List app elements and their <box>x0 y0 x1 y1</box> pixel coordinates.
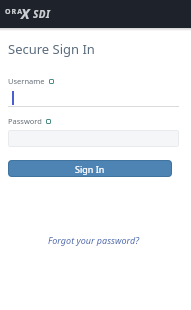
staticText: Sign In <box>75 163 105 175</box>
button[interactable] <box>8 130 179 147</box>
staticText: ORA <box>5 7 23 17</box>
staticText: X <box>21 4 30 23</box>
button[interactable] <box>8 86 179 107</box>
button[interactable]: ORA <box>0 0 191 28</box>
staticText: Password <box>8 116 42 126</box>
staticText: Username <box>8 76 45 86</box>
button[interactable]: Sign In <box>8 160 172 177</box>
staticText: SDI <box>33 7 51 21</box>
staticText: Secure Sign In <box>8 40 95 58</box>
button[interactable]: Forgot your password? <box>48 234 140 246</box>
